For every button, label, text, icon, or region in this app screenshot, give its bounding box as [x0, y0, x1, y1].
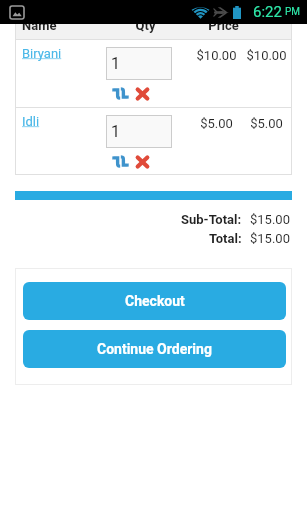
staticText: 1	[111, 54, 120, 73]
button[interactable]: Remove item	[135, 87, 150, 101]
button[interactable]: Checkout	[23, 282, 286, 320]
staticText: Qty	[99, 18, 192, 33]
staticText: Name	[22, 18, 99, 33]
button[interactable]: Continue Ordering	[23, 330, 286, 368]
button[interactable]: Update quantity	[112, 155, 129, 168]
staticText: $5.00	[192, 116, 241, 131]
staticText: Continue Ordering	[97, 341, 212, 357]
button[interactable]: Biryani	[22, 46, 62, 61]
staticText: Sub-Total:	[181, 212, 242, 227]
button[interactable]: Remove item	[135, 155, 150, 169]
staticText: Checkout	[125, 293, 185, 309]
staticText: $15.00	[250, 212, 290, 227]
staticText: $10.00	[241, 48, 292, 63]
staticText: $15.00	[250, 231, 290, 246]
staticText: $10.00	[192, 48, 241, 63]
staticText: Price	[199, 18, 248, 33]
staticText: Total:	[209, 231, 242, 246]
button[interactable]: Idli	[22, 114, 40, 129]
staticText: $5.00	[241, 116, 292, 131]
staticText: 1	[111, 122, 120, 141]
staticText: PM	[285, 6, 301, 18]
button[interactable]: Update quantity	[112, 87, 129, 100]
staticText: 6:22	[253, 3, 282, 21]
